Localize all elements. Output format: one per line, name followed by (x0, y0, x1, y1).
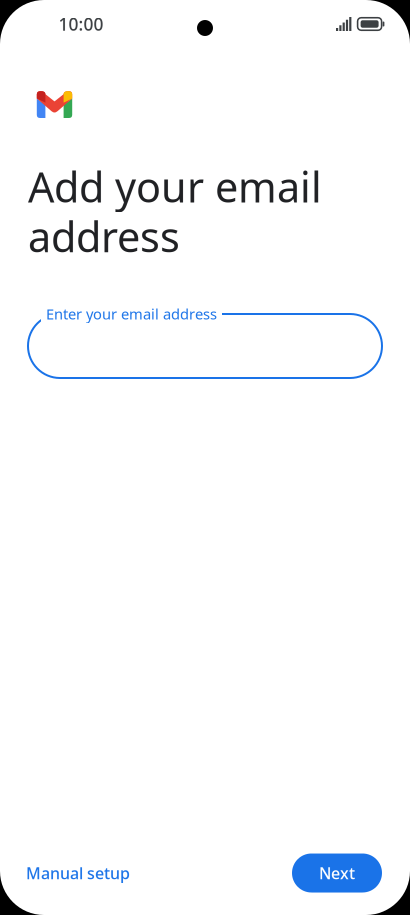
staticText: address (28, 209, 180, 264)
button[interactable]: Manual setup (14, 851, 142, 895)
button[interactable]: Next (292, 853, 382, 892)
staticText: 10:00 (58, 12, 103, 35)
button[interactable]: Enter your email address (28, 304, 382, 378)
staticText: Add your email (28, 159, 322, 214)
staticText: Manual setup (26, 862, 130, 884)
staticText: Enter your email address (46, 304, 217, 323)
staticText: Next (319, 862, 355, 884)
